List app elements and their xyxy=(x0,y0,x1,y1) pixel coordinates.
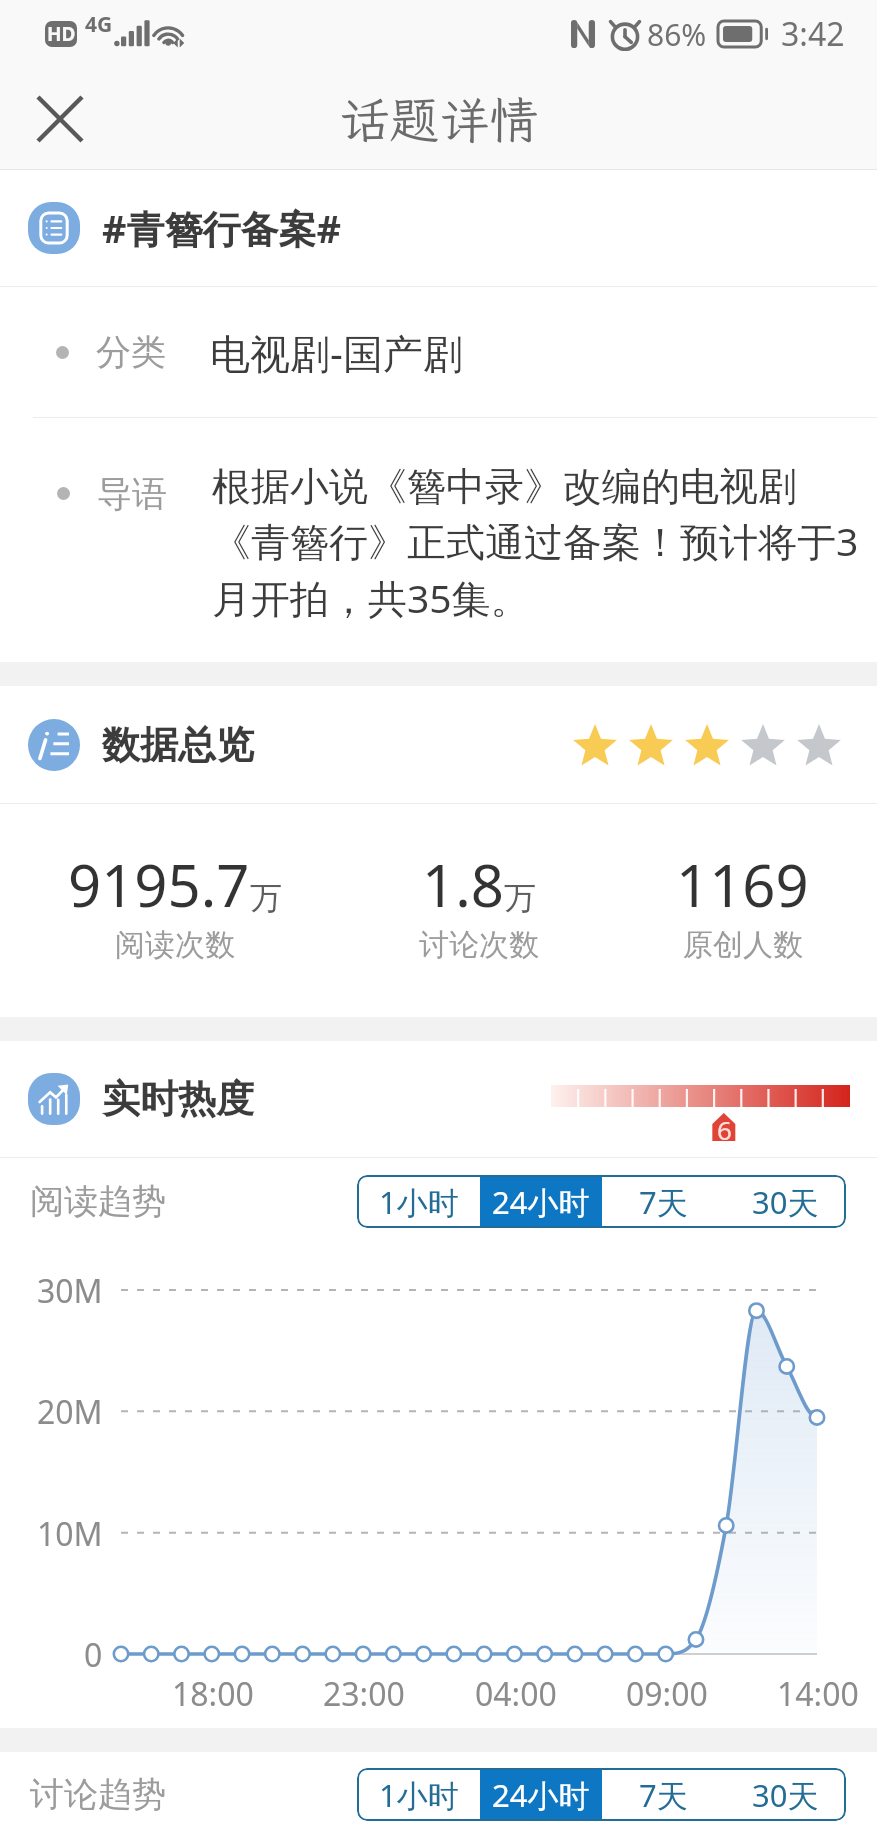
button[interactable]: 24小时 xyxy=(480,1175,602,1228)
staticText: 24小时 xyxy=(492,1774,590,1816)
staticText: 万 xyxy=(504,878,536,918)
staticText: 1.8 xyxy=(422,845,504,924)
staticText: 18:00 xyxy=(172,1672,254,1714)
staticText: 9195.7 xyxy=(68,845,250,924)
button[interactable]: 7天 xyxy=(602,1175,724,1228)
staticText: 30天 xyxy=(752,1181,819,1223)
staticText: 6 xyxy=(717,1112,732,1140)
staticText: 原创人数 xyxy=(683,926,803,964)
staticText: 23:00 xyxy=(323,1672,405,1714)
staticText: 分类 xyxy=(96,330,166,374)
button[interactable]: 7天 xyxy=(602,1768,724,1821)
staticText: 实时热度 xyxy=(102,1075,254,1123)
staticText: 86% xyxy=(647,14,707,55)
staticText: 万 xyxy=(250,878,282,918)
staticText: 10M xyxy=(37,1512,103,1554)
staticText: 数据总览 xyxy=(102,721,254,769)
staticText: 09:00 xyxy=(626,1672,708,1714)
staticText: 1小时 xyxy=(379,1181,459,1223)
staticText: 0 xyxy=(84,1633,103,1675)
staticText: 7天 xyxy=(639,1181,688,1223)
button[interactable]: 30天 xyxy=(724,1768,846,1821)
staticText: 讨论趋势 xyxy=(30,1773,166,1816)
button[interactable]: Close xyxy=(20,79,100,159)
staticText: HD xyxy=(47,21,76,47)
button[interactable]: 1小时 xyxy=(357,1768,480,1821)
staticText: 根据小说《簪中录》改编的电视剧 《青簪行》正式通过备案！预计将于3 月开拍，共3… xyxy=(212,462,859,625)
staticText: 导语 xyxy=(97,472,167,516)
staticText: 阅读次数 xyxy=(115,926,235,964)
button[interactable]: 24小时 xyxy=(480,1768,602,1821)
staticText: 电视剧-国产剧 xyxy=(210,325,463,380)
staticText: 1小时 xyxy=(379,1774,459,1816)
staticText: 4G xyxy=(85,10,113,39)
staticText: 7天 xyxy=(639,1774,688,1816)
staticText: 话题详情 xyxy=(339,86,539,152)
staticText: 14:00 xyxy=(777,1672,859,1714)
staticText: 20M xyxy=(37,1390,103,1432)
staticText: 3:42 xyxy=(781,12,845,56)
staticText: 1169 xyxy=(676,845,809,924)
button[interactable]: 30天 xyxy=(724,1175,846,1228)
staticText: #青簪行备案# xyxy=(102,202,342,254)
staticText: 24小时 xyxy=(492,1181,590,1223)
staticText: 讨论次数 xyxy=(419,926,539,964)
button[interactable]: #青簪行备案# xyxy=(0,170,877,286)
button[interactable]: 1小时 xyxy=(357,1175,480,1228)
staticText: 30M xyxy=(37,1269,103,1311)
staticText: 04:00 xyxy=(475,1672,557,1714)
staticText: 30天 xyxy=(752,1774,819,1816)
staticText: 阅读趋势 xyxy=(30,1180,166,1223)
